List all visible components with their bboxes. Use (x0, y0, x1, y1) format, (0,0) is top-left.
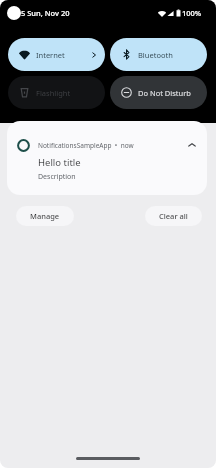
staticText: 5 Sun, Nov 20 (21, 8, 70, 18)
staticText: 100% (182, 8, 202, 18)
staticText: Manage (30, 211, 60, 221)
button[interactable]: NotificationsSampleApp • now (7, 121, 207, 195)
button[interactable]: Do Not Disturb (110, 76, 207, 109)
staticText: Do Not Disturb (138, 88, 191, 98)
button[interactable]: Collapse (185, 138, 199, 152)
staticText: Clear all (159, 211, 188, 221)
staticText: Flashlight (36, 88, 71, 98)
button[interactable]: Manage (16, 206, 74, 226)
button[interactable]: Bluetooth (110, 38, 207, 71)
staticText: Bluetooth (138, 50, 173, 60)
staticText: NotificationsSampleApp • now (38, 141, 134, 150)
staticText: Hello title (38, 156, 81, 169)
staticText: Internet (36, 50, 65, 60)
button[interactable]: Clear all (145, 206, 202, 226)
staticText: Description (38, 172, 76, 182)
button[interactable]: Internet (8, 38, 105, 71)
button[interactable]: Flashlight (8, 76, 105, 109)
